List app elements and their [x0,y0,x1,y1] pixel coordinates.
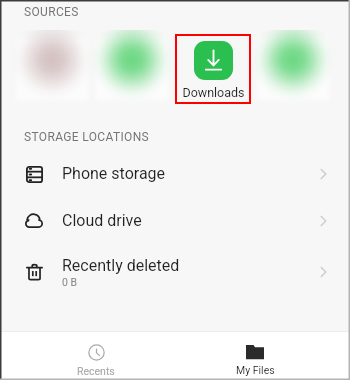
staticText: Phone storage [62,164,166,183]
other: My Files [246,344,264,360]
staticText: Downloads [182,85,245,100]
staticText: Recently deleted [62,256,180,275]
button[interactable]: Phone storage [0,150,350,197]
staticText: My Files [236,364,275,376]
button[interactable]: My Files [215,340,295,380]
button[interactable]: Cloud drive [0,197,350,244]
button[interactable]: Recents [56,340,136,380]
button[interactable]: Recently deleted [0,244,350,300]
staticText: Recents [77,365,115,377]
button[interactable]: Downloads [175,34,251,104]
staticText: STORAGE LOCATIONS [24,130,150,144]
staticText: 0 B [62,276,78,288]
staticText: Cloud drive [62,211,142,230]
other: Recents [88,344,105,361]
staticText: SOURCES [24,5,79,19]
